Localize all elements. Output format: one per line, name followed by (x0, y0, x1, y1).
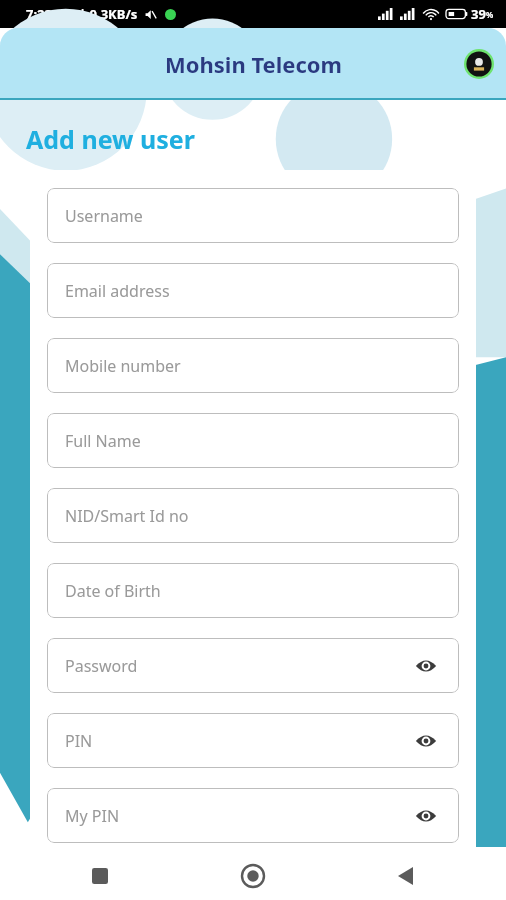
button[interactable]: Home (176, 851, 329, 900)
staticText: 39 (471, 5, 486, 23)
button[interactable]: Mobile number (47, 338, 459, 393)
button[interactable]: Toggle password visibility (411, 801, 441, 831)
button[interactable]: Password (47, 638, 459, 693)
button[interactable]: PIN (47, 713, 459, 768)
staticText: Full Name (65, 430, 441, 452)
button[interactable]: NID/Smart Id no (47, 488, 459, 543)
button[interactable]: Profile (462, 47, 496, 81)
button[interactable]: My PIN (47, 788, 459, 843)
button[interactable]: Toggle password visibility (411, 726, 441, 756)
button[interactable]: Back (329, 851, 482, 900)
staticText: Email address (65, 280, 441, 302)
staticText: Date of Birth (65, 580, 441, 602)
staticText: Add new user (26, 122, 195, 156)
staticText: NID/Smart Id no (65, 505, 441, 527)
button[interactable]: Recents (24, 851, 176, 900)
button[interactable]: Username (47, 188, 459, 243)
staticText: 7:22 PM | 0.3KB/s (26, 5, 138, 23)
staticText: PIN (65, 730, 411, 752)
button[interactable]: Date of Birth (47, 563, 459, 618)
staticText: Mohsin Telecom (165, 49, 342, 79)
staticText: My PIN (65, 805, 411, 827)
staticText: Mobile number (65, 355, 441, 377)
button[interactable]: Full Name (47, 413, 459, 468)
button[interactable]: Toggle password visibility (411, 651, 441, 681)
staticText: Username (65, 205, 441, 227)
button[interactable]: Email address (47, 263, 459, 318)
staticText: Password (65, 655, 411, 677)
staticText: % (486, 9, 494, 20)
